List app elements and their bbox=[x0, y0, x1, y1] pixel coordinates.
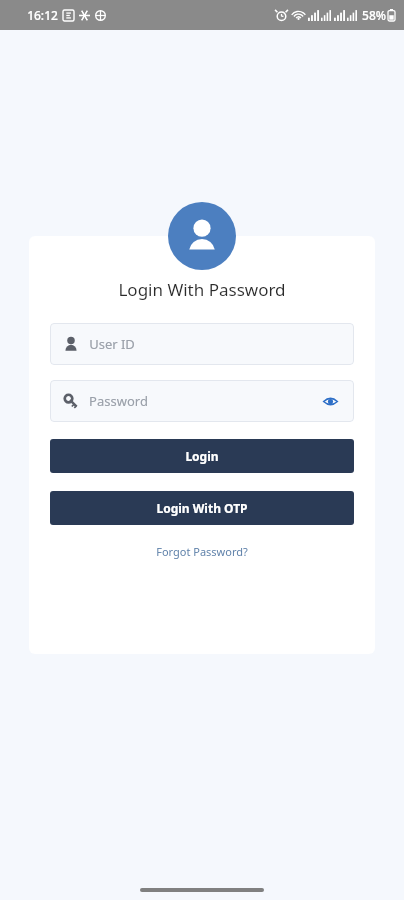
staticText: Password bbox=[89, 392, 148, 410]
staticText: User ID bbox=[89, 335, 135, 353]
button[interactable]: Forgot Password? bbox=[148, 540, 256, 563]
button[interactable]: Login bbox=[50, 439, 354, 473]
button[interactable]: User ID bbox=[50, 323, 354, 365]
button[interactable]: Password bbox=[50, 380, 354, 422]
other: User avatar bbox=[168, 202, 236, 270]
staticText: 16:12 bbox=[27, 7, 58, 23]
staticText: Login With OTP bbox=[156, 500, 248, 516]
button[interactable]: Show password bbox=[319, 390, 341, 412]
staticText: Login bbox=[185, 448, 219, 464]
staticText: Login With Password bbox=[118, 278, 286, 301]
button[interactable]: Login With OTP bbox=[50, 491, 354, 525]
staticText: Forgot Password? bbox=[156, 544, 248, 559]
staticText: 58% bbox=[362, 7, 386, 23]
